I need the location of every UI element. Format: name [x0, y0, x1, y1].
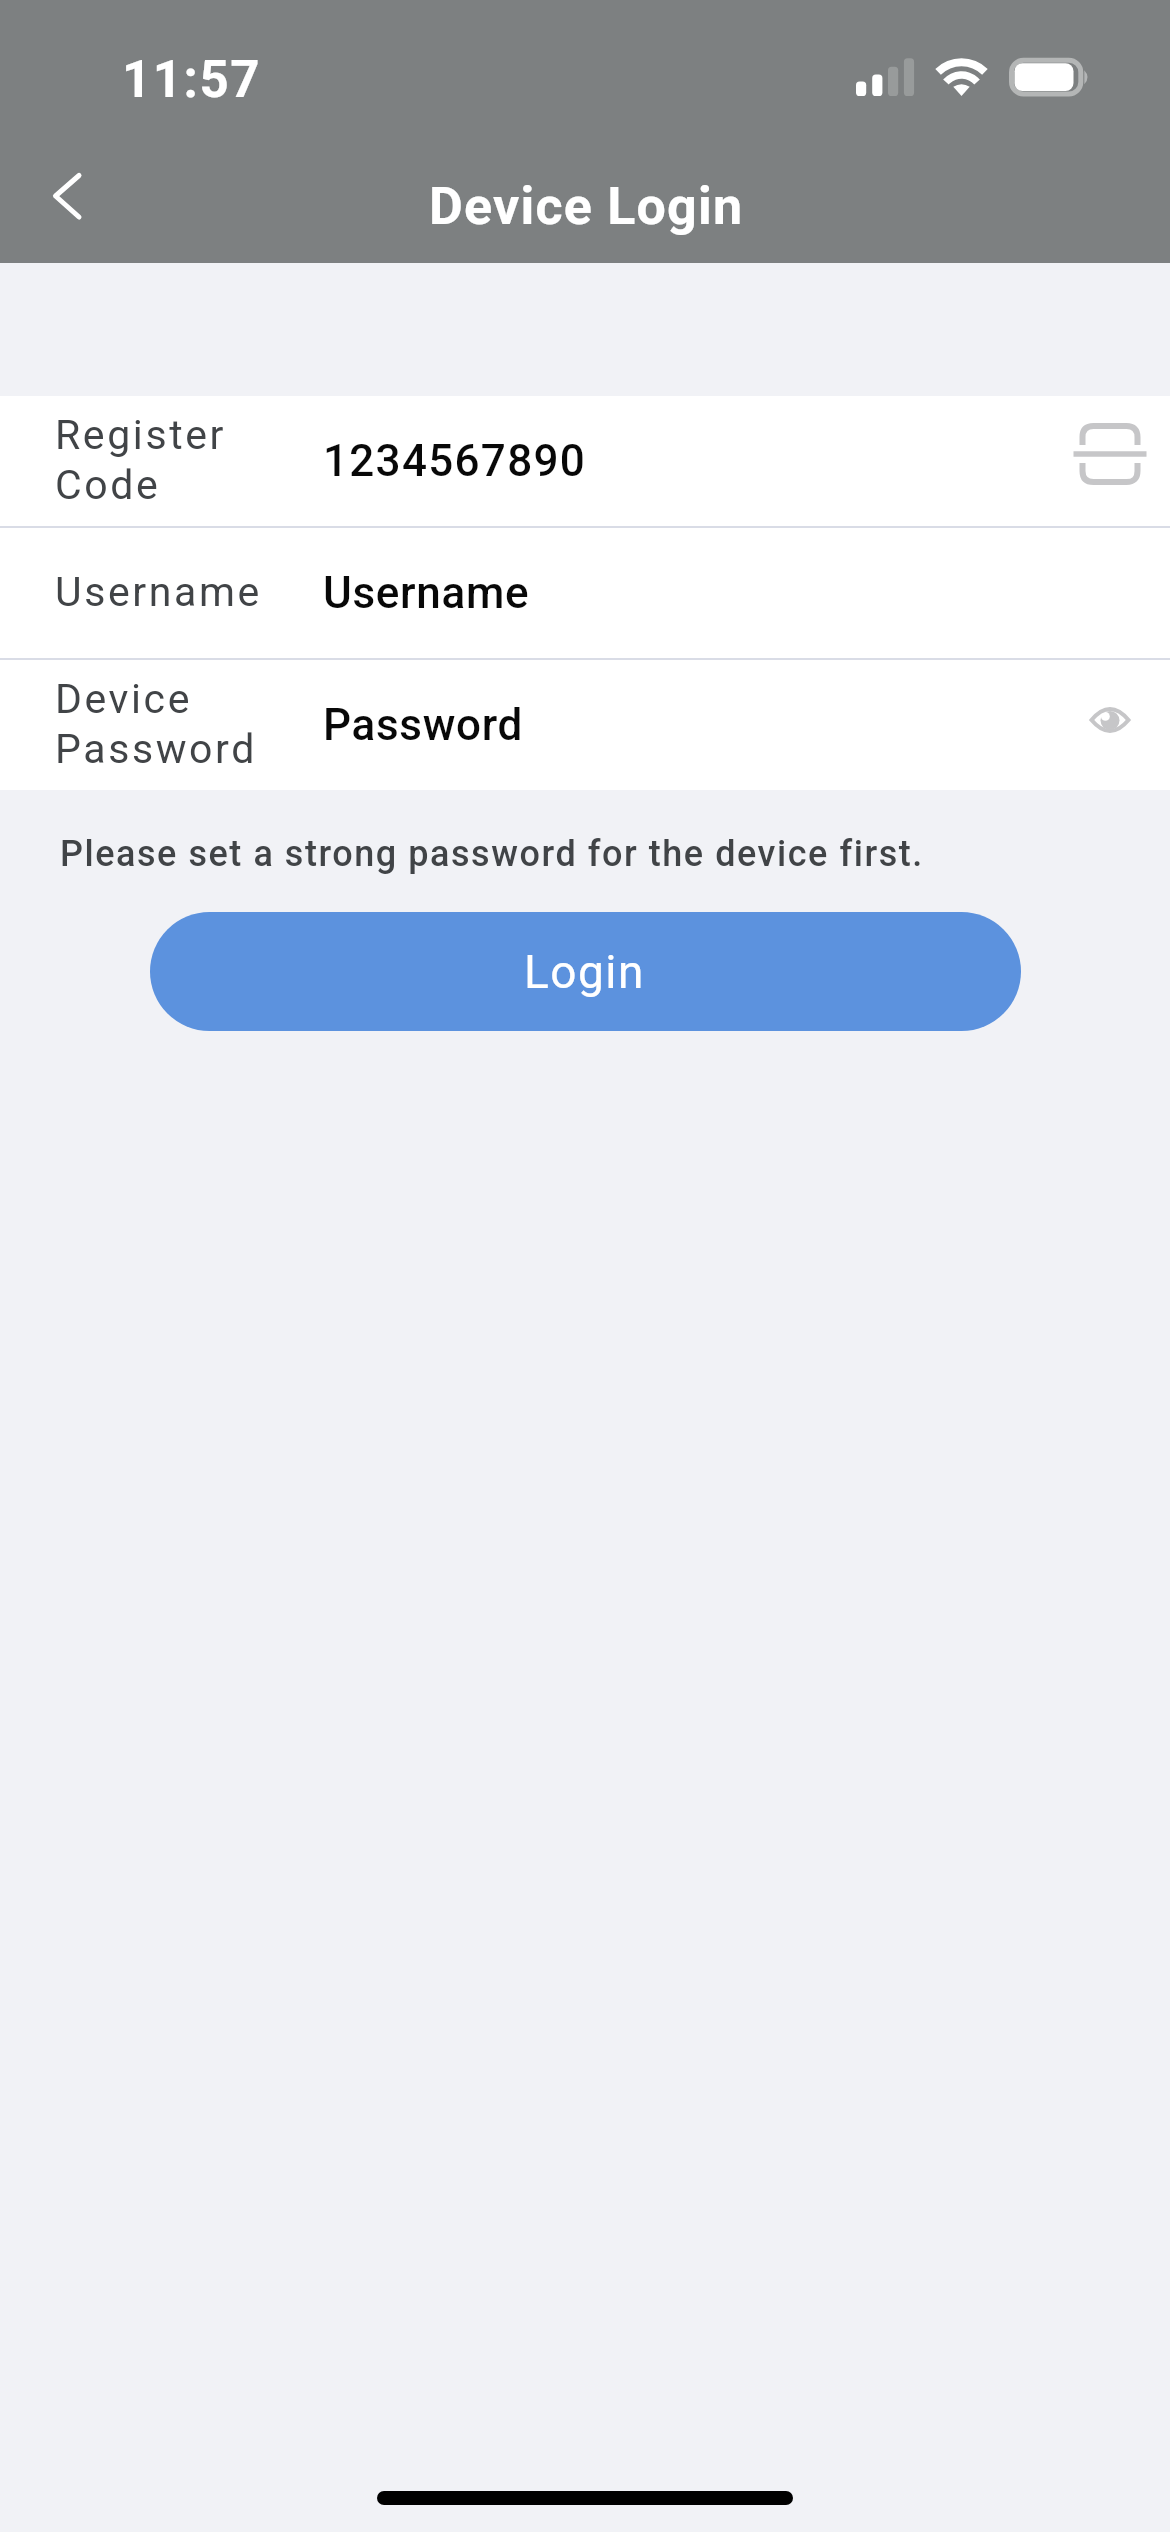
button[interactable]: Back [13, 153, 99, 239]
staticText: 1234567890 [323, 435, 587, 487]
button[interactable]: Device Password [0, 660, 1170, 790]
staticText: Login [524, 945, 645, 999]
button[interactable]: Register Code [0, 396, 1170, 526]
staticText: Password [323, 699, 524, 751]
staticText: Device Password [55, 675, 257, 773]
staticText: 11:57 [122, 50, 261, 110]
staticText: Please set a strong password for the dev… [60, 833, 924, 875]
staticText: Username [323, 567, 530, 619]
button[interactable]: Login [150, 912, 1021, 1031]
button[interactable]: Scan code [1049, 396, 1170, 526]
button[interactable]: Username [0, 528, 1170, 658]
staticText: Username [55, 568, 262, 616]
button[interactable]: Show password [1049, 660, 1170, 790]
staticText: Register Code [55, 411, 227, 509]
staticText: Device Login [429, 176, 744, 237]
